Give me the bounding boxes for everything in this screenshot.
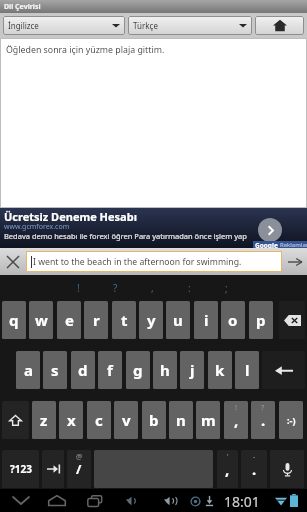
staticText: q <box>9 310 19 330</box>
button[interactable]: e <box>57 301 81 339</box>
staticText: z <box>40 410 48 430</box>
staticText: / <box>76 460 82 478</box>
button[interactable]: Enter <box>262 351 305 389</box>
staticText: ' <box>227 452 229 462</box>
button[interactable]: v <box>114 401 138 439</box>
staticText: w <box>35 310 48 330</box>
button[interactable]: Home <box>255 16 304 35</box>
button[interactable]: ?123 <box>2 450 39 488</box>
staticText: Bedava demo hesabı ile forexi öğren Para… <box>4 231 247 241</box>
button[interactable]: r <box>84 301 108 339</box>
button[interactable]: ' <box>217 450 238 488</box>
button[interactable]: m <box>196 401 220 439</box>
button[interactable]: Backspace <box>279 301 305 339</box>
button[interactable]: ! <box>224 401 248 439</box>
staticText: Türkçe <box>133 20 158 31</box>
staticText: n <box>176 410 186 430</box>
staticText: . <box>252 459 257 479</box>
button[interactable]: j <box>180 351 204 389</box>
staticText: Dil Çevirisi <box>4 2 41 12</box>
staticText: g <box>133 360 143 380</box>
staticText: u <box>173 310 183 330</box>
staticText: a <box>24 360 33 380</box>
button[interactable]: : <box>171 275 208 301</box>
button[interactable]: w <box>29 301 53 339</box>
staticText: İngilizce <box>8 20 39 31</box>
button[interactable]: Ücretsiz Deneme Hesabı <box>0 208 307 248</box>
staticText: : <box>188 281 191 295</box>
button[interactable]: Voice input <box>270 450 304 488</box>
button[interactable]: Hide keyboard <box>0 489 42 512</box>
button[interactable]: ; <box>208 275 245 301</box>
staticText: , <box>151 281 154 295</box>
staticText: x <box>67 410 76 430</box>
staticText: s <box>51 360 59 380</box>
button[interactable]: , <box>134 275 171 301</box>
button[interactable]: p <box>249 301 273 339</box>
button[interactable]: @ <box>67 450 91 488</box>
staticText: b <box>149 410 159 430</box>
button[interactable]: l <box>235 351 259 389</box>
staticText: ? <box>113 281 118 295</box>
button[interactable]: o <box>221 301 245 339</box>
button[interactable]: t <box>112 301 136 339</box>
button[interactable]: c <box>87 401 111 439</box>
button[interactable]: ? <box>97 275 134 301</box>
button[interactable]: İngilizce <box>3 16 125 35</box>
staticText: k <box>215 360 225 380</box>
staticText: j <box>190 360 195 380</box>
button[interactable]: f <box>98 351 122 389</box>
staticText: m <box>201 410 216 430</box>
button[interactable]: Home <box>36 489 78 512</box>
button[interactable]: g <box>126 351 150 389</box>
button[interactable]: Translate <box>282 248 307 275</box>
button[interactable]: a <box>16 351 40 389</box>
button[interactable]: y <box>139 301 163 339</box>
button[interactable]: i <box>194 301 218 339</box>
button[interactable]: Recent apps <box>73 489 115 512</box>
staticText: y <box>147 310 156 330</box>
staticText: ! <box>77 281 80 295</box>
button[interactable]: - <box>241 450 267 488</box>
button[interactable]: Open ad <box>258 218 282 242</box>
button[interactable]: Shift <box>2 401 29 439</box>
staticText: e <box>65 310 74 330</box>
button[interactable]: n <box>169 401 193 439</box>
button[interactable]: b <box>142 401 166 439</box>
staticText: v <box>122 410 131 430</box>
staticText: , <box>225 459 230 479</box>
staticText: ; <box>225 281 228 295</box>
staticText: c <box>95 410 103 430</box>
button[interactable]: :-) <box>279 401 303 439</box>
staticText: www.gcmforex.com <box>4 222 70 232</box>
button[interactable]: ! <box>60 275 97 301</box>
button[interactable]: Türkçe <box>128 16 252 35</box>
button[interactable]: k <box>208 351 232 389</box>
staticText: ? <box>261 403 265 413</box>
button[interactable]: ? <box>251 401 275 439</box>
staticText: i <box>204 310 209 330</box>
button[interactable]: Clear text <box>0 248 26 275</box>
staticText: p <box>256 310 266 330</box>
staticText: 18:01 <box>224 492 260 511</box>
staticText: d <box>78 360 88 380</box>
staticText: f <box>107 360 113 380</box>
staticText: . <box>261 410 266 430</box>
button[interactable]: x <box>59 401 83 439</box>
staticText: l <box>245 360 250 380</box>
button[interactable]: Tab <box>42 450 64 488</box>
button[interactable]: q <box>2 301 26 339</box>
staticText: h <box>160 360 170 380</box>
button[interactable]: I went to the beach in the afternoon for… <box>26 251 282 272</box>
button[interactable]: d <box>71 351 95 389</box>
staticText: Ücretsiz Deneme Hesabı <box>4 209 137 224</box>
button[interactable]: h <box>153 351 177 389</box>
staticText: r <box>93 310 100 330</box>
button[interactable]: s <box>43 351 67 389</box>
button[interactable]: z <box>32 401 56 439</box>
staticText: Öğleden sonra için yüzme plaja gittim. <box>6 44 165 56</box>
staticText: Google <box>255 241 278 249</box>
button[interactable]: u <box>166 301 190 339</box>
staticText: Reklamları <box>280 241 307 249</box>
